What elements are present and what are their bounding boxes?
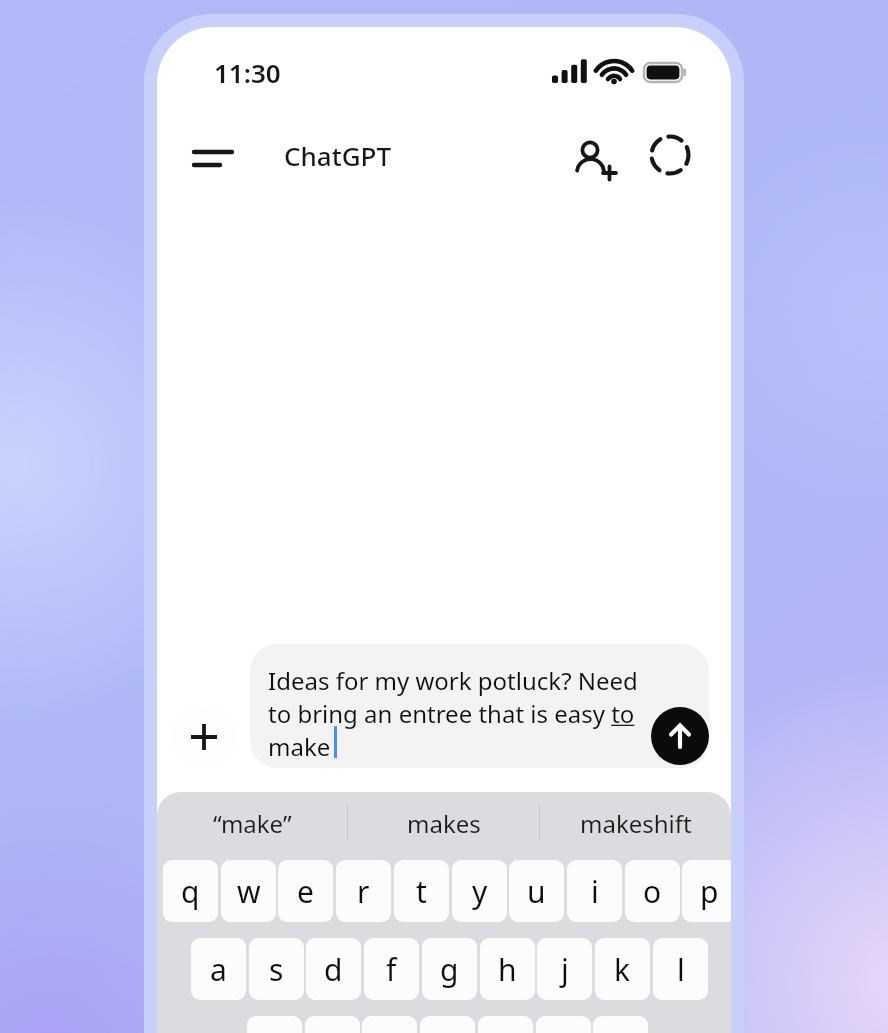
button[interactable]: d	[306, 938, 361, 1000]
staticText: o	[643, 871, 662, 912]
button[interactable]: Send	[651, 707, 709, 765]
button[interactable]: a	[191, 938, 246, 1000]
staticText: r	[357, 871, 370, 912]
button[interactable]: Invite people	[550, 124, 628, 186]
staticText: f	[386, 949, 397, 990]
staticText: u	[527, 871, 546, 912]
button[interactable]: e	[278, 860, 333, 922]
button[interactable]: b	[478, 1016, 533, 1033]
button[interactable]: q	[163, 860, 218, 922]
staticText: y	[472, 871, 488, 912]
button[interactable]: k	[595, 938, 650, 1000]
button[interactable]: Ideas for my work potluck? Need to bring…	[250, 644, 709, 768]
button[interactable]: z	[247, 1016, 302, 1033]
staticText: i	[591, 871, 599, 912]
button[interactable]: makes	[348, 792, 539, 854]
button[interactable]: x	[305, 1016, 360, 1033]
button[interactable]: ChatGPT	[256, 124, 420, 186]
staticText: d	[324, 949, 343, 990]
staticText: l	[677, 949, 685, 990]
staticText: makeshift	[580, 807, 692, 840]
button[interactable]: m	[593, 1016, 648, 1033]
button[interactable]: y	[452, 860, 507, 922]
button[interactable]: l	[653, 938, 708, 1000]
button[interactable]: Temporary chat	[632, 124, 708, 186]
staticText: t	[416, 871, 427, 912]
button[interactable]: Add attachment	[172, 705, 236, 769]
staticText: w	[237, 871, 261, 912]
staticText: makes	[407, 807, 481, 840]
button[interactable]: o	[625, 860, 680, 922]
button[interactable]: makeshift	[540, 792, 731, 854]
staticText: g	[440, 949, 459, 990]
staticText: ChatGPT	[284, 138, 392, 173]
staticText: j	[561, 949, 569, 990]
staticText: p	[700, 871, 719, 912]
staticText: “make”	[213, 807, 292, 840]
button[interactable]: Open sidebar	[178, 124, 240, 186]
button[interactable]: t	[394, 860, 449, 922]
staticText: q	[181, 871, 200, 912]
button[interactable]: n	[536, 1016, 591, 1033]
staticText: Ideas for my work potluck? Need to bring…	[268, 664, 660, 763]
button[interactable]: v	[420, 1016, 475, 1033]
button[interactable]: w	[221, 860, 276, 922]
button[interactable]: p	[682, 860, 731, 922]
staticText: s	[269, 949, 284, 990]
button[interactable]: h	[480, 938, 535, 1000]
button[interactable]: s	[249, 938, 304, 1000]
button[interactable]: g	[422, 938, 477, 1000]
button[interactable]: f	[364, 938, 419, 1000]
staticText: k	[614, 949, 631, 990]
button[interactable]: r	[336, 860, 391, 922]
button[interactable]: i	[567, 860, 622, 922]
staticText: h	[498, 949, 517, 990]
button[interactable]: j	[537, 938, 592, 1000]
button[interactable]: “make”	[157, 792, 347, 854]
staticText: e	[297, 871, 314, 912]
staticText: 11:30	[214, 55, 281, 90]
button[interactable]: u	[509, 860, 564, 922]
button[interactable]: c	[362, 1016, 417, 1033]
staticText: a	[210, 949, 227, 990]
